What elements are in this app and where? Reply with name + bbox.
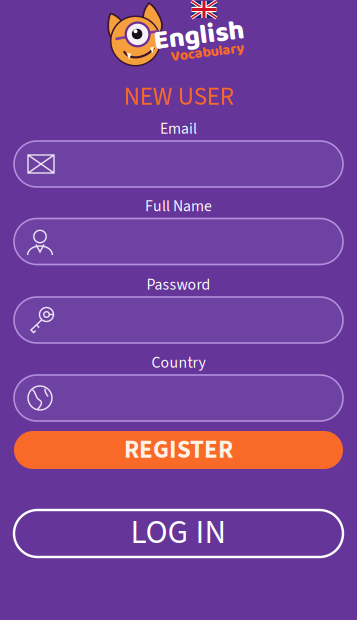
staticText: Email bbox=[160, 118, 197, 140]
button[interactable]: REGISTER bbox=[14, 431, 343, 469]
button[interactable] bbox=[14, 297, 343, 343]
button[interactable] bbox=[14, 141, 343, 187]
button[interactable] bbox=[14, 375, 343, 421]
staticText: Vocabulary bbox=[170, 41, 244, 64]
button[interactable] bbox=[14, 218, 343, 264]
button[interactable]: LOG IN bbox=[14, 510, 343, 557]
staticText: LOG IN bbox=[130, 509, 226, 556]
staticText: REGISTER bbox=[124, 432, 233, 468]
staticText: NEW USER bbox=[123, 79, 233, 115]
staticText: Country bbox=[151, 352, 205, 374]
staticText: Full Name bbox=[145, 195, 212, 217]
staticText: Password bbox=[146, 274, 210, 296]
staticText: English bbox=[153, 14, 244, 58]
